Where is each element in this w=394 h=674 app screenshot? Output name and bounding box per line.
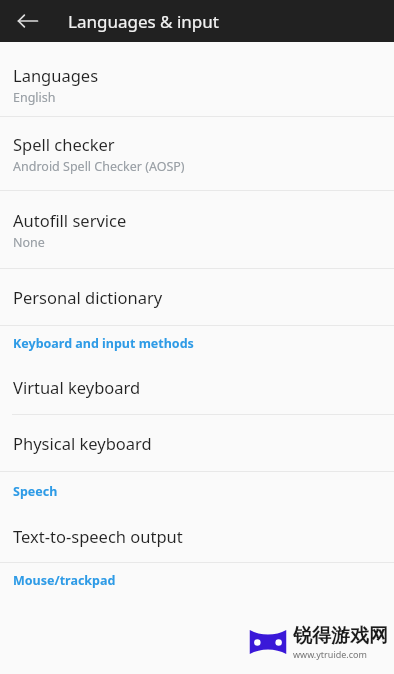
staticText: Virtual keyboard [13, 376, 141, 398]
staticText: English [13, 89, 56, 106]
staticText: Autofill service [13, 209, 127, 231]
staticText: Physical keyboard [13, 432, 152, 454]
staticText: Spell checker [13, 133, 115, 155]
staticText: 锐得游戏网 [293, 624, 388, 648]
staticText: Android Spell Checker (AOSP) [13, 158, 185, 175]
button[interactable]: Text-to-speech output [0, 510, 394, 562]
staticText: Text-to-speech output [13, 525, 183, 547]
staticText: Personal dictionary [13, 286, 163, 308]
button[interactable]: Autofill service [0, 191, 394, 268]
button[interactable]: Back [8, 1, 48, 41]
staticText: Mouse/trackpad [13, 572, 116, 589]
staticText: Languages & input [68, 10, 219, 33]
staticText: None [13, 234, 45, 251]
staticText: Languages [13, 64, 99, 86]
button[interactable]: Personal dictionary [0, 269, 394, 325]
staticText: www.ytruide.com [293, 648, 367, 660]
button[interactable]: Languages [0, 54, 394, 116]
button[interactable]: Virtual keyboard [0, 360, 394, 414]
button[interactable]: Spell checker [0, 117, 394, 190]
staticText: Speech [13, 483, 58, 500]
button[interactable]: Physical keyboard [0, 415, 394, 471]
staticText: Keyboard and input methods [13, 335, 194, 352]
